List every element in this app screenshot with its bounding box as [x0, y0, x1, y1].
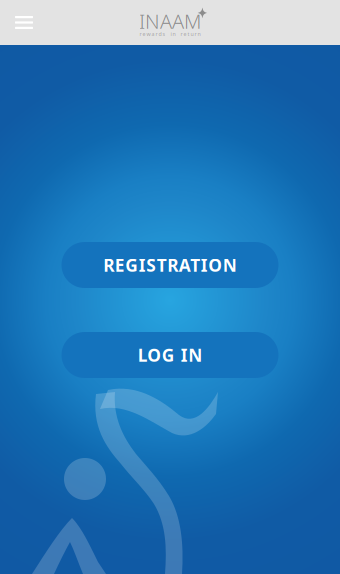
- button[interactable]: LOG IN: [61, 332, 278, 378]
- button[interactable]: REGISTRATION: [61, 242, 278, 288]
- button[interactable]: Menu: [4, 2, 44, 42]
- staticText: INAAM: [139, 8, 201, 34]
- staticText: r e w a r d s i n r e t u r n: [139, 30, 200, 38]
- staticText: LOG IN: [138, 343, 202, 366]
- staticText: REGISTRATION: [103, 253, 237, 276]
